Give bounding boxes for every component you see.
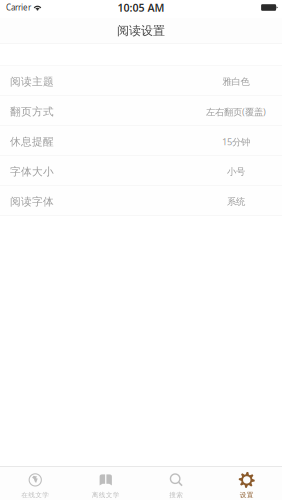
button[interactable]: 休息提醒 xyxy=(0,126,282,156)
staticText: 雅白色 xyxy=(222,76,249,87)
staticText: 翻页方式 xyxy=(10,105,54,118)
button[interactable]: 在线文学 xyxy=(0,466,70,500)
button[interactable]: 搜索 xyxy=(141,466,211,500)
staticText: 在线文学 xyxy=(21,491,49,499)
staticText: 阅读设置 xyxy=(117,23,165,38)
button[interactable]: 阅读主题 xyxy=(0,66,282,96)
staticText: 设置 xyxy=(240,491,254,499)
staticText: 15分钟 xyxy=(222,136,250,148)
staticText: 阅读字体 xyxy=(10,195,54,208)
button[interactable]: 设置 xyxy=(211,466,282,500)
button[interactable]: 字体大小 xyxy=(0,156,282,186)
staticText: 10:05 AM xyxy=(117,0,164,15)
staticText: 字体大小 xyxy=(10,165,54,178)
button[interactable]: 翻页方式 xyxy=(0,96,282,126)
staticText: 阅读主题 xyxy=(10,75,54,88)
staticText: 离线文学 xyxy=(92,491,120,499)
staticText: Carrier xyxy=(6,2,31,13)
staticText: 休息提醒 xyxy=(10,135,54,148)
button[interactable]: 离线文学 xyxy=(70,466,141,500)
staticText: 搜索 xyxy=(169,491,183,499)
staticText: 小号 xyxy=(227,166,245,177)
staticText: 左右翻页(覆盖) xyxy=(206,106,266,118)
staticText: 系统 xyxy=(227,196,245,207)
button[interactable]: 阅读字体 xyxy=(0,186,282,216)
